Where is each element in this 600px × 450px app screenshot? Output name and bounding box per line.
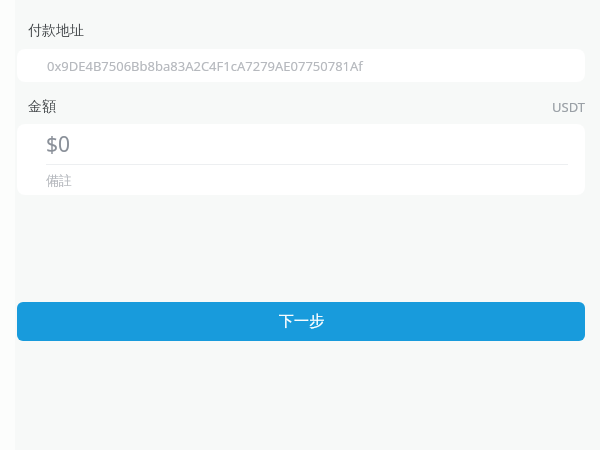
staticText: 下一步 (279, 312, 324, 331)
button[interactable]: $0 (17, 124, 585, 164)
button[interactable]: 備註 (17, 165, 585, 195)
staticText: 備註 (46, 172, 72, 188)
staticText: $0 (46, 130, 71, 159)
staticText: 0x9DE4B7506Bb8ba83A2C4F1cA7279AE07750781… (47, 57, 363, 75)
button[interactable]: 下一步 (17, 302, 585, 341)
button[interactable]: 0x9DE4B7506Bb8ba83A2C4F1cA7279AE07750781… (17, 49, 585, 82)
staticText: USDT (552, 98, 585, 116)
staticText: 金額 (28, 98, 56, 116)
staticText: 付款地址 (28, 22, 84, 40)
